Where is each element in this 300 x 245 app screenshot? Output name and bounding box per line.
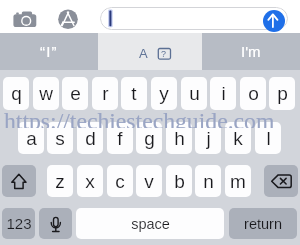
button[interactable]: Backspace bbox=[264, 165, 298, 197]
button[interactable]: App Store bbox=[56, 9, 80, 30]
button[interactable]: n bbox=[195, 165, 221, 197]
button[interactable]: 123 bbox=[2, 208, 35, 239]
button[interactable]: y bbox=[151, 77, 177, 110]
button[interactable]: i bbox=[210, 77, 236, 110]
button[interactable]: return bbox=[229, 208, 297, 239]
button[interactable]: h bbox=[166, 122, 192, 154]
staticText: s bbox=[55, 128, 65, 149]
button[interactable]: p bbox=[269, 77, 295, 110]
staticText: j bbox=[206, 128, 211, 149]
staticText: m bbox=[230, 171, 246, 192]
button[interactable]: s bbox=[47, 122, 73, 154]
staticText: i bbox=[221, 83, 226, 104]
button[interactable]: d bbox=[77, 122, 103, 154]
button[interactable]: g bbox=[136, 122, 162, 154]
button[interactable]: a bbox=[18, 122, 44, 154]
button[interactable] bbox=[100, 7, 288, 30]
button[interactable]: Shift bbox=[2, 165, 36, 197]
staticText: x bbox=[85, 171, 95, 192]
button[interactable]: o bbox=[240, 77, 266, 110]
button[interactable]: I'm bbox=[202, 33, 300, 70]
button[interactable]: Dictation bbox=[39, 208, 72, 239]
button[interactable]: f bbox=[107, 122, 133, 154]
staticText: b bbox=[174, 171, 185, 192]
button[interactable]: w bbox=[33, 77, 59, 110]
staticText: h bbox=[174, 128, 185, 149]
button[interactable]: r bbox=[92, 77, 118, 110]
staticText: d bbox=[85, 128, 96, 149]
button[interactable]: t bbox=[121, 77, 147, 110]
staticText: space bbox=[131, 216, 170, 232]
button[interactable]: j bbox=[195, 122, 221, 154]
staticText: t bbox=[131, 83, 137, 104]
staticText: a bbox=[26, 128, 37, 149]
button[interactable]: A bbox=[98, 33, 201, 70]
staticText: n bbox=[203, 171, 214, 192]
staticText: 123 bbox=[6, 215, 32, 232]
staticText: https://techiestechguide.com bbox=[4, 108, 275, 128]
staticText: “I” bbox=[40, 43, 58, 60]
button[interactable]: z bbox=[47, 165, 73, 197]
staticText: l bbox=[266, 128, 271, 149]
button[interactable]: e bbox=[62, 77, 88, 110]
staticText: y bbox=[159, 83, 169, 104]
staticText: q bbox=[11, 83, 22, 104]
staticText: u bbox=[189, 83, 200, 104]
button[interactable]: x bbox=[77, 165, 103, 197]
staticText: p bbox=[277, 83, 288, 104]
button[interactable]: q bbox=[3, 77, 29, 110]
button[interactable]: “I” bbox=[0, 33, 98, 70]
staticText: r bbox=[102, 83, 109, 104]
button[interactable]: c bbox=[107, 165, 133, 197]
staticText: A bbox=[139, 46, 148, 61]
staticText: w bbox=[39, 83, 53, 104]
staticText: o bbox=[248, 83, 259, 104]
staticText: k bbox=[233, 128, 243, 149]
button[interactable]: u bbox=[181, 77, 207, 110]
staticText: return bbox=[244, 216, 282, 232]
button[interactable]: m bbox=[225, 165, 251, 197]
button[interactable]: v bbox=[136, 165, 162, 197]
button[interactable]: k bbox=[225, 122, 251, 154]
staticText: f bbox=[117, 128, 123, 149]
button[interactable]: b bbox=[166, 165, 192, 197]
staticText: e bbox=[70, 83, 81, 104]
staticText: I'm bbox=[241, 43, 261, 60]
staticText: c bbox=[115, 171, 125, 192]
staticText: z bbox=[55, 171, 65, 192]
button[interactable]: Camera bbox=[10, 6, 40, 30]
staticText: ? bbox=[161, 49, 167, 59]
staticText: g bbox=[144, 128, 155, 149]
button[interactable]: Send bbox=[263, 10, 285, 32]
button[interactable]: l bbox=[255, 122, 281, 154]
staticText: v bbox=[144, 171, 154, 192]
button[interactable]: space bbox=[76, 208, 224, 239]
